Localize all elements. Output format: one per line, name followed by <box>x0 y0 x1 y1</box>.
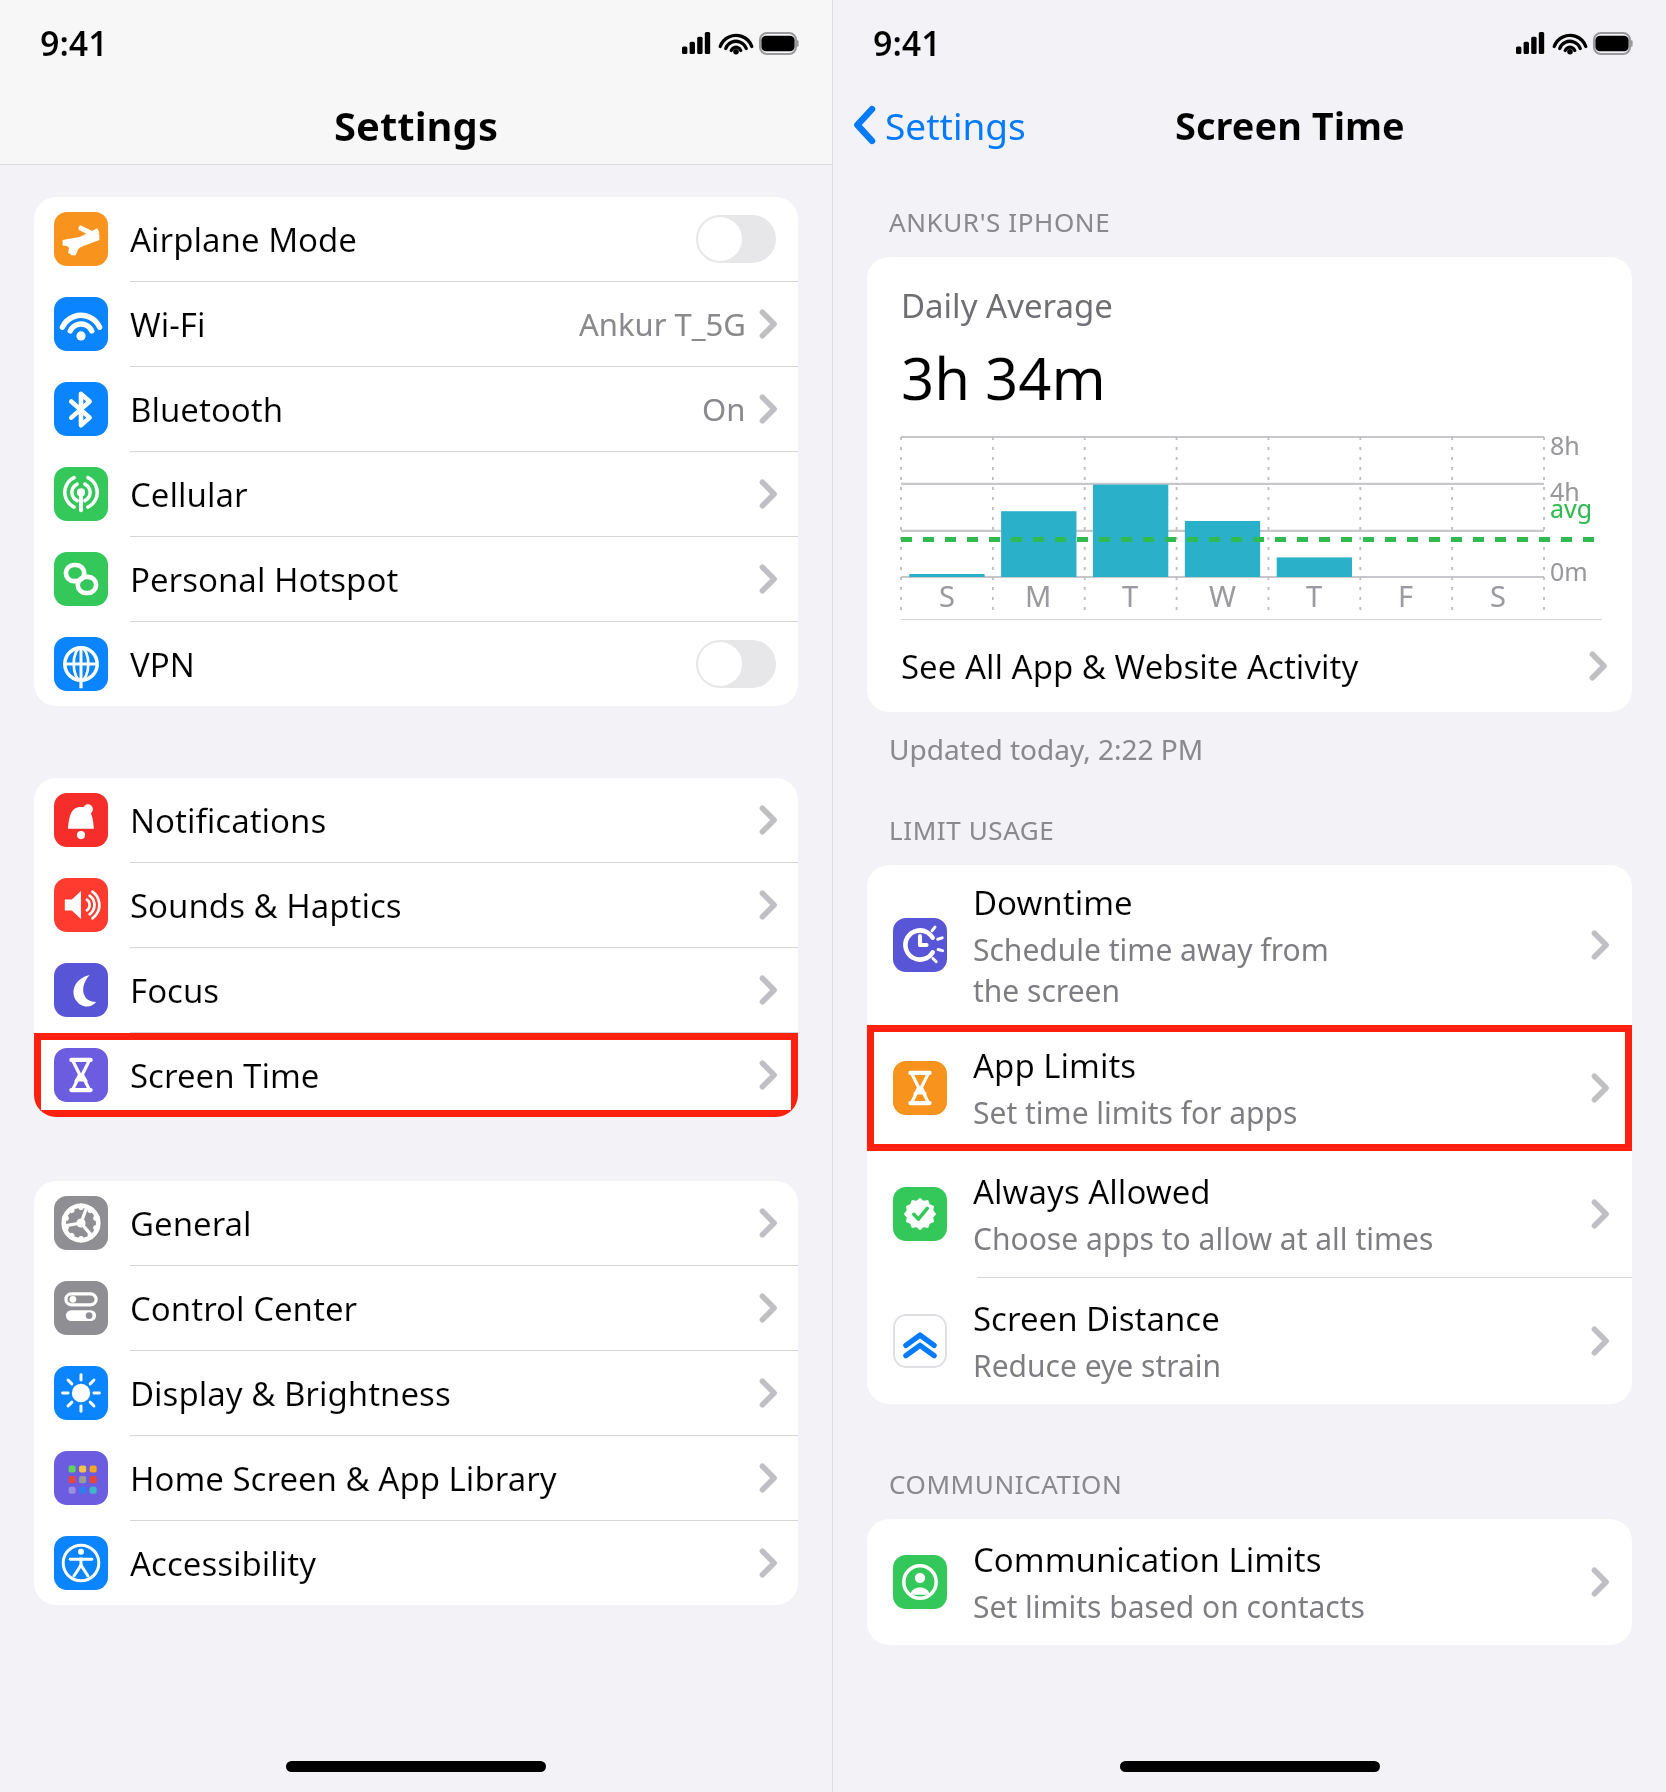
staticText: App Limits <box>973 1043 1137 1088</box>
staticText: ANKUR'S IPHONE <box>889 204 1111 239</box>
staticText: Communication Limits <box>973 1537 1322 1582</box>
staticText: Sounds & Haptics <box>130 883 760 928</box>
staticText: Notifications <box>130 798 760 843</box>
button[interactable]: Settings <box>855 100 1026 150</box>
staticText: T <box>1306 576 1323 615</box>
button[interactable]: App Limits <box>867 1025 1632 1151</box>
button[interactable]: Wi-Fi <box>34 282 798 366</box>
staticText: 9:41 <box>873 20 941 66</box>
staticText: S <box>939 576 955 615</box>
button[interactable]: Communication Limits <box>867 1519 1632 1645</box>
staticText: Wi-Fi <box>130 302 579 347</box>
staticText: 9:41 <box>40 20 108 66</box>
button[interactable]: Notifications <box>34 778 798 862</box>
staticText: Updated today, 2:22 PM <box>889 730 1204 768</box>
staticText: Focus <box>130 968 760 1013</box>
staticText: avg <box>1550 491 1593 525</box>
button[interactable]: Accessibility <box>34 1521 798 1605</box>
button[interactable]: See All App & Website Activity <box>867 620 1632 712</box>
button[interactable]: Airplane Mode <box>34 197 798 281</box>
staticText: Screen Distance <box>973 1296 1220 1341</box>
staticText: Accessibility <box>130 1541 760 1586</box>
staticText: Screen Time <box>130 1053 760 1098</box>
button[interactable]: Always Allowed <box>867 1151 1632 1277</box>
button[interactable]: Personal Hotspot <box>34 537 798 621</box>
staticText: Set limits based on contacts <box>973 1586 1365 1627</box>
staticText: T <box>1122 576 1139 615</box>
button[interactable]: Control Center <box>34 1266 798 1350</box>
button[interactable]: Toggle <box>696 215 776 263</box>
staticText: Choose apps to allow at all times <box>973 1218 1434 1259</box>
staticText: F <box>1398 576 1414 615</box>
staticText: Reduce eye strain <box>973 1345 1222 1386</box>
staticText: 4h <box>1550 474 1580 508</box>
button[interactable]: Home Screen & App Library <box>34 1436 798 1520</box>
button[interactable]: Bluetooth <box>34 367 798 451</box>
staticText: General <box>130 1201 760 1246</box>
staticText: Display & Brightness <box>130 1371 760 1416</box>
staticText: LIMIT USAGE <box>889 812 1055 847</box>
button[interactable]: Focus <box>34 948 798 1032</box>
staticText: Downtime <box>973 880 1133 925</box>
staticText: Home Screen & App Library <box>130 1456 760 1501</box>
button[interactable]: Cellular <box>34 452 798 536</box>
button[interactable]: Display & Brightness <box>34 1351 798 1435</box>
staticText: Daily Average <box>901 283 1113 328</box>
staticText: Control Center <box>130 1286 760 1331</box>
staticText: M <box>1025 576 1052 615</box>
staticText: Schedule time away from the screen <box>973 929 1329 1011</box>
staticText: On <box>702 388 746 430</box>
staticText: Bluetooth <box>130 387 702 432</box>
staticText: Screen Time <box>1175 99 1405 151</box>
staticText: S <box>1490 576 1506 615</box>
button[interactable]: Screen Time <box>34 1033 798 1117</box>
staticText: Cellular <box>130 472 760 517</box>
staticText: Settings <box>334 98 498 152</box>
button[interactable]: Sounds & Haptics <box>34 863 798 947</box>
staticText: COMMUNICATION <box>889 1466 1123 1501</box>
staticText: 3h 34m <box>901 338 1106 417</box>
staticText: 0m <box>1550 554 1588 588</box>
button[interactable]: Toggle <box>696 640 776 688</box>
button[interactable]: Screen Distance <box>867 1278 1632 1404</box>
staticText: Always Allowed <box>973 1169 1211 1214</box>
staticText: 8h <box>1550 428 1580 462</box>
staticText: W <box>1209 576 1236 615</box>
staticText: Personal Hotspot <box>130 557 760 602</box>
staticText: Set time limits for apps <box>973 1092 1298 1133</box>
button[interactable]: Downtime <box>867 865 1632 1025</box>
button[interactable]: VPN <box>34 622 798 706</box>
staticText: Airplane Mode <box>130 217 696 262</box>
staticText: Settings <box>885 100 1026 150</box>
staticText: See All App & Website Activity <box>901 644 1590 689</box>
button[interactable]: General <box>34 1181 798 1265</box>
staticText: Ankur T_5G <box>579 303 746 345</box>
staticText: VPN <box>130 642 696 687</box>
